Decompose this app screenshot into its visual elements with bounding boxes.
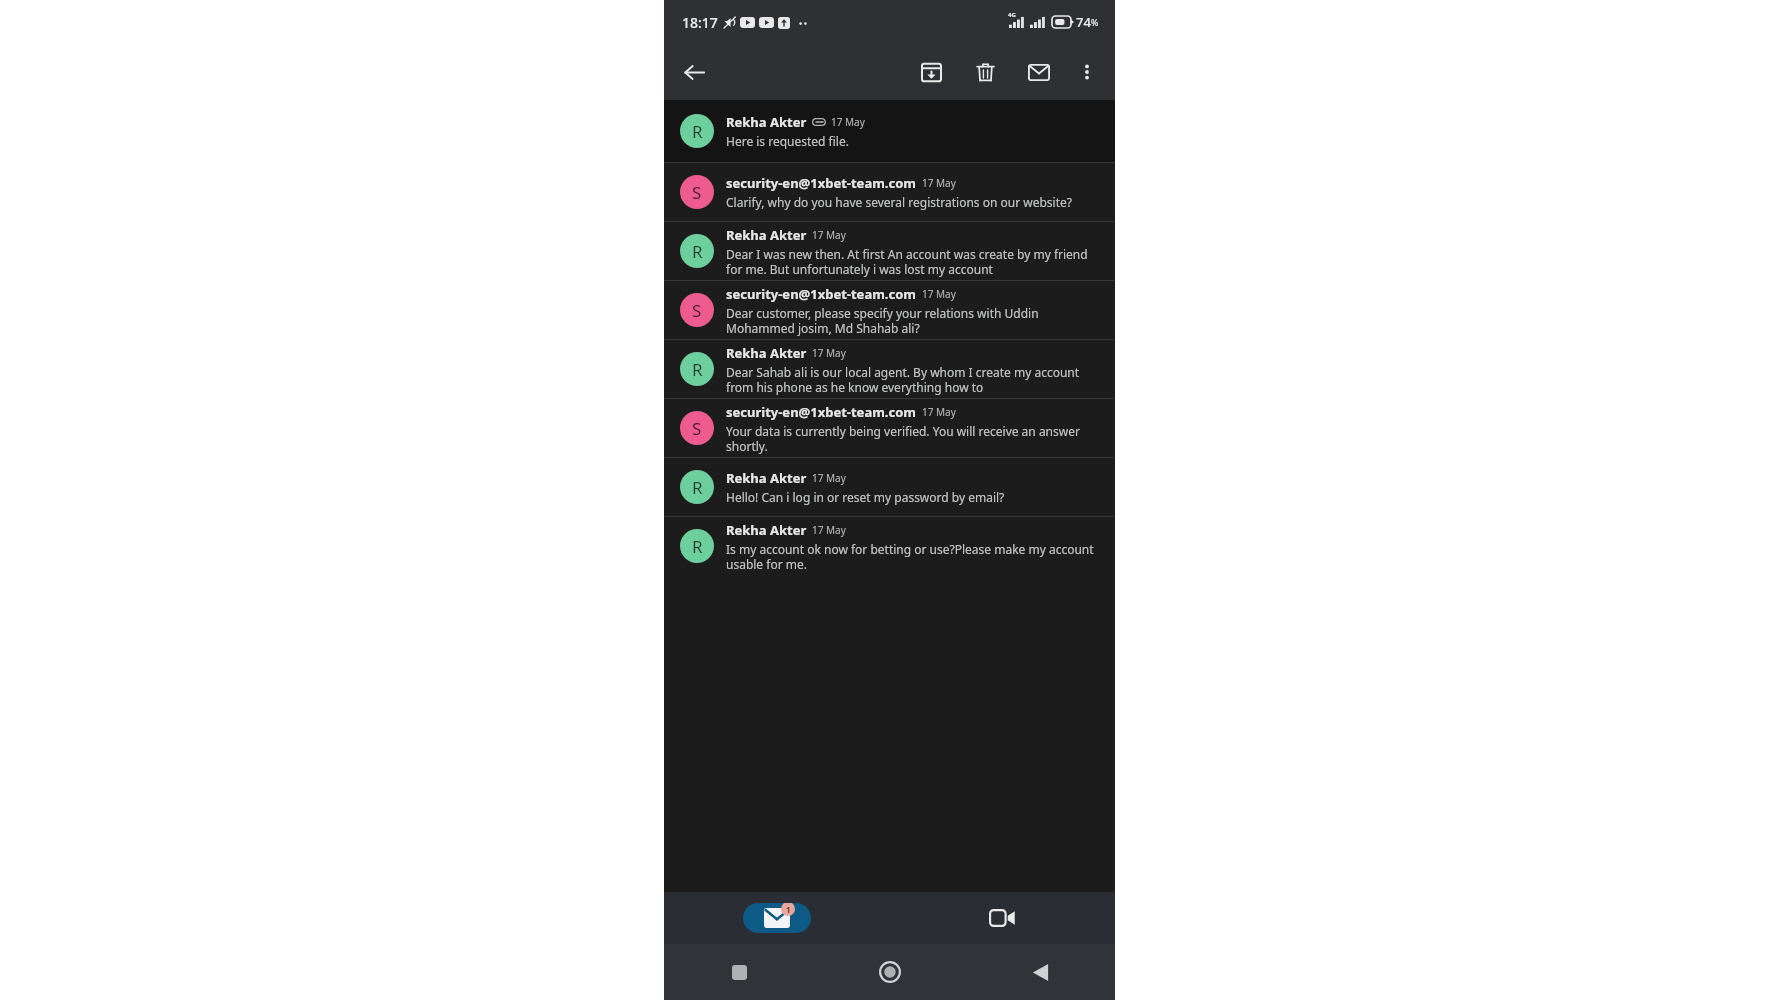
staticText: 17 May xyxy=(922,176,956,190)
staticText: Rekha Akter xyxy=(726,113,807,131)
staticText: 17 May xyxy=(922,405,956,419)
button[interactable]: R xyxy=(664,517,1115,575)
staticText: 17 May xyxy=(812,523,846,537)
staticText: 1 xyxy=(786,904,791,915)
staticText: R xyxy=(692,535,703,558)
staticText: R xyxy=(692,476,703,499)
staticText: security-en@1xbet-team.com xyxy=(726,285,917,303)
staticText: % xyxy=(1091,16,1099,28)
staticText: Dear customer, please specify your relat… xyxy=(726,305,1101,336)
staticText: R xyxy=(692,358,703,381)
staticText: 17 May xyxy=(812,228,846,242)
button[interactable]: R xyxy=(664,458,1115,516)
staticText: 74 xyxy=(1076,13,1091,31)
button[interactable]: Back xyxy=(670,48,718,96)
other: Mail xyxy=(743,903,811,933)
button[interactable]: S xyxy=(664,399,1115,457)
button[interactable]: R xyxy=(664,222,1115,280)
staticText: Rekha Akter xyxy=(726,344,807,362)
staticText: Rekha Akter xyxy=(726,521,807,539)
button[interactable]: Archive xyxy=(907,48,955,96)
staticText: 17 May xyxy=(831,115,865,129)
staticText: Dear Sahab ali is our local agent. By wh… xyxy=(726,364,1101,395)
staticText: Clarify, why do you have several registr… xyxy=(726,194,1073,210)
button[interactable]: More options xyxy=(1065,50,1109,94)
button[interactable]: S xyxy=(664,163,1115,221)
staticText: S xyxy=(692,299,702,322)
button[interactable]: R xyxy=(664,340,1115,398)
button[interactable]: Back xyxy=(965,944,1115,1000)
staticText: Is my account ok now for betting or use?… xyxy=(726,541,1101,572)
button[interactable]: R xyxy=(664,100,1115,162)
staticText: Here is requested file. xyxy=(726,133,849,149)
staticText: Rekha Akter xyxy=(726,469,807,487)
staticText: 17 May xyxy=(922,287,956,301)
button[interactable]: Mark unread xyxy=(1015,48,1063,96)
button[interactable]: Delete xyxy=(961,48,1009,96)
button[interactable]: Mail xyxy=(664,892,889,944)
button[interactable]: S xyxy=(664,281,1115,339)
staticText: S xyxy=(692,181,702,204)
staticText: S xyxy=(692,417,702,440)
staticText: Hello! Can i log in or reset my password… xyxy=(726,489,1005,505)
staticText: Your data is currently being verified. Y… xyxy=(726,423,1101,454)
staticText: 17 May xyxy=(812,471,846,485)
button[interactable]: Meet xyxy=(889,892,1115,944)
staticText: 4G xyxy=(1008,11,1016,19)
staticText: R xyxy=(692,120,703,143)
staticText: security-en@1xbet-team.com xyxy=(726,174,917,192)
staticText: security-en@1xbet-team.com xyxy=(726,403,917,421)
button[interactable]: Home xyxy=(815,944,965,1000)
button[interactable]: Recent apps xyxy=(664,944,815,1000)
staticText: Rekha Akter xyxy=(726,226,807,244)
staticText: 18:17 xyxy=(682,13,718,32)
staticText: Dear I was new then. At first An account… xyxy=(726,246,1101,277)
staticText: R xyxy=(692,240,703,263)
staticText: 17 May xyxy=(812,346,846,360)
